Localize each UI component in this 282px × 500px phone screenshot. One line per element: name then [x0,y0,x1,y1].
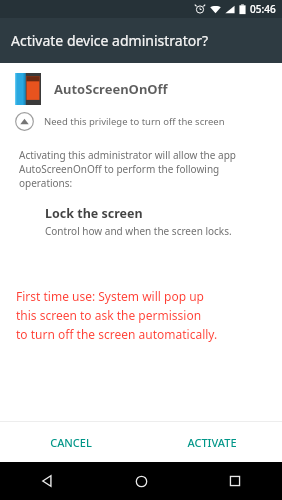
staticText: ACTIVATE [187,435,237,450]
staticText: Control how and when the screen locks. [45,224,232,238]
button[interactable]: Home [94,462,188,500]
button[interactable]: CANCEL [0,422,141,462]
staticText: Activate device administrator? [11,31,209,50]
staticText: Need this privilege to turn off the scre… [44,115,225,128]
staticText: Lock the screen [45,205,143,222]
button[interactable]: Back [0,462,94,500]
button[interactable]: ACTIVATE [141,422,282,462]
button[interactable]: Collapse details [0,109,282,134]
staticText: First time use: System will pop up this … [16,288,218,342]
staticText: Activating this administrator will allow… [19,148,236,190]
staticText: CANCEL [50,435,92,450]
staticText: 05:46 [250,2,276,16]
staticText: AutoScreenOnOff [54,80,168,98]
button[interactable]: Recent apps [188,462,282,500]
other: Collapse details [14,111,35,132]
